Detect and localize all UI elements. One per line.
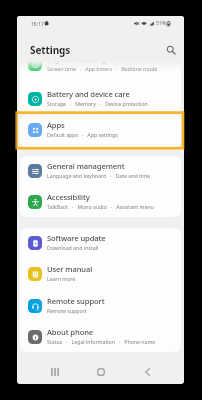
button[interactable]: Battery and device care	[20, 83, 181, 114]
staticText: User manual	[47, 264, 93, 274]
staticText: Apps	[47, 120, 65, 130]
staticText: Language and keyboard · Date and time	[47, 172, 151, 179]
button[interactable]: Home	[92, 363, 110, 381]
button[interactable]: Digital Wellbeing	[20, 48, 181, 79]
button[interactable]: Software update	[20, 227, 181, 258]
staticText: Storage · Memory · Device protection	[47, 100, 148, 107]
staticText: Battery and device care	[47, 89, 130, 99]
button[interactable]: Recent apps	[46, 363, 64, 381]
staticText: Settings	[30, 43, 71, 57]
button[interactable]: Back	[138, 363, 156, 381]
staticText: TalkBack · Mono audio · Assistant menu	[47, 203, 154, 210]
staticText: Default apps · App settings	[47, 131, 118, 138]
button[interactable]: General management	[20, 155, 181, 186]
button[interactable]: Apps	[20, 114, 181, 145]
staticText: Screen time · App timers · Bedtime mode	[47, 65, 158, 72]
staticText: Status · Legal information · Phone name	[47, 338, 156, 345]
staticText: Remote support	[47, 307, 87, 314]
button[interactable]: About phone	[20, 321, 181, 352]
staticText: Digital Wellbeing	[47, 54, 107, 64]
staticText: Remote support	[47, 296, 105, 306]
button[interactable]: User manual	[20, 258, 181, 289]
staticText: Accessibility	[47, 192, 90, 202]
button[interactable]: Remote support	[20, 290, 181, 321]
button[interactable]: Accessibility	[20, 186, 181, 217]
staticText: General management	[47, 161, 125, 171]
staticText: About phone	[47, 327, 94, 337]
staticText: Learn more	[47, 275, 76, 282]
staticText: 51%	[156, 20, 166, 27]
staticText: Download and install	[47, 244, 99, 251]
staticText: 16:17	[31, 21, 44, 28]
button[interactable]: Search	[162, 41, 180, 59]
staticText: Software update	[47, 233, 106, 243]
